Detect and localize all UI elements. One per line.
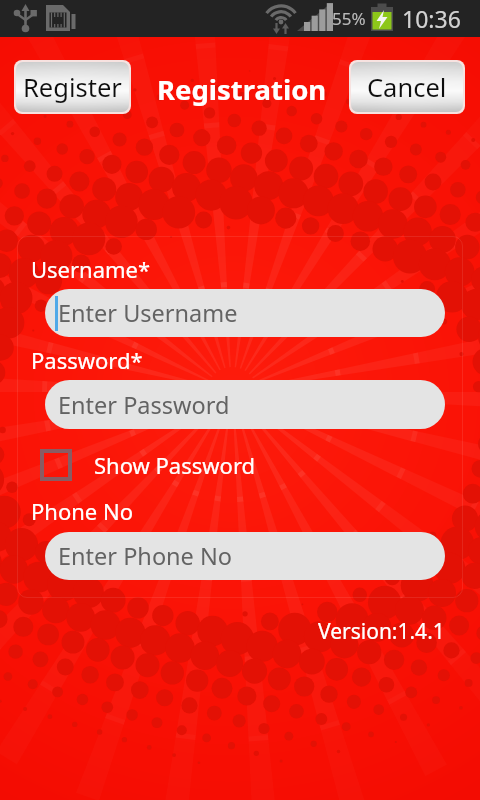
button[interactable]: Enter Password [45, 380, 445, 429]
staticText: Version:1.4.1 [318, 617, 445, 646]
button[interactable]: Enter Username [45, 289, 445, 337]
staticText: Username* [31, 254, 151, 284]
staticText: Register [23, 70, 122, 105]
button[interactable]: Enter Phone No [45, 532, 445, 580]
staticText: 10:36 [402, 3, 461, 34]
staticText: Enter Phone No [58, 540, 233, 572]
staticText: Phone No [31, 496, 133, 526]
staticText: Show Password [94, 450, 256, 480]
staticText: 55% [332, 7, 366, 30]
button[interactable]: Register [16, 62, 129, 112]
staticText: Enter Password [58, 389, 230, 421]
staticText: Cancel [367, 70, 447, 105]
staticText: Registration [157, 71, 327, 108]
other: Show Password checkbox [40, 449, 72, 481]
staticText: Enter Username [58, 297, 238, 329]
button[interactable]: Cancel [351, 62, 463, 112]
button[interactable]: Show Password checkbox [33, 442, 278, 487]
staticText: Password* [31, 345, 143, 375]
